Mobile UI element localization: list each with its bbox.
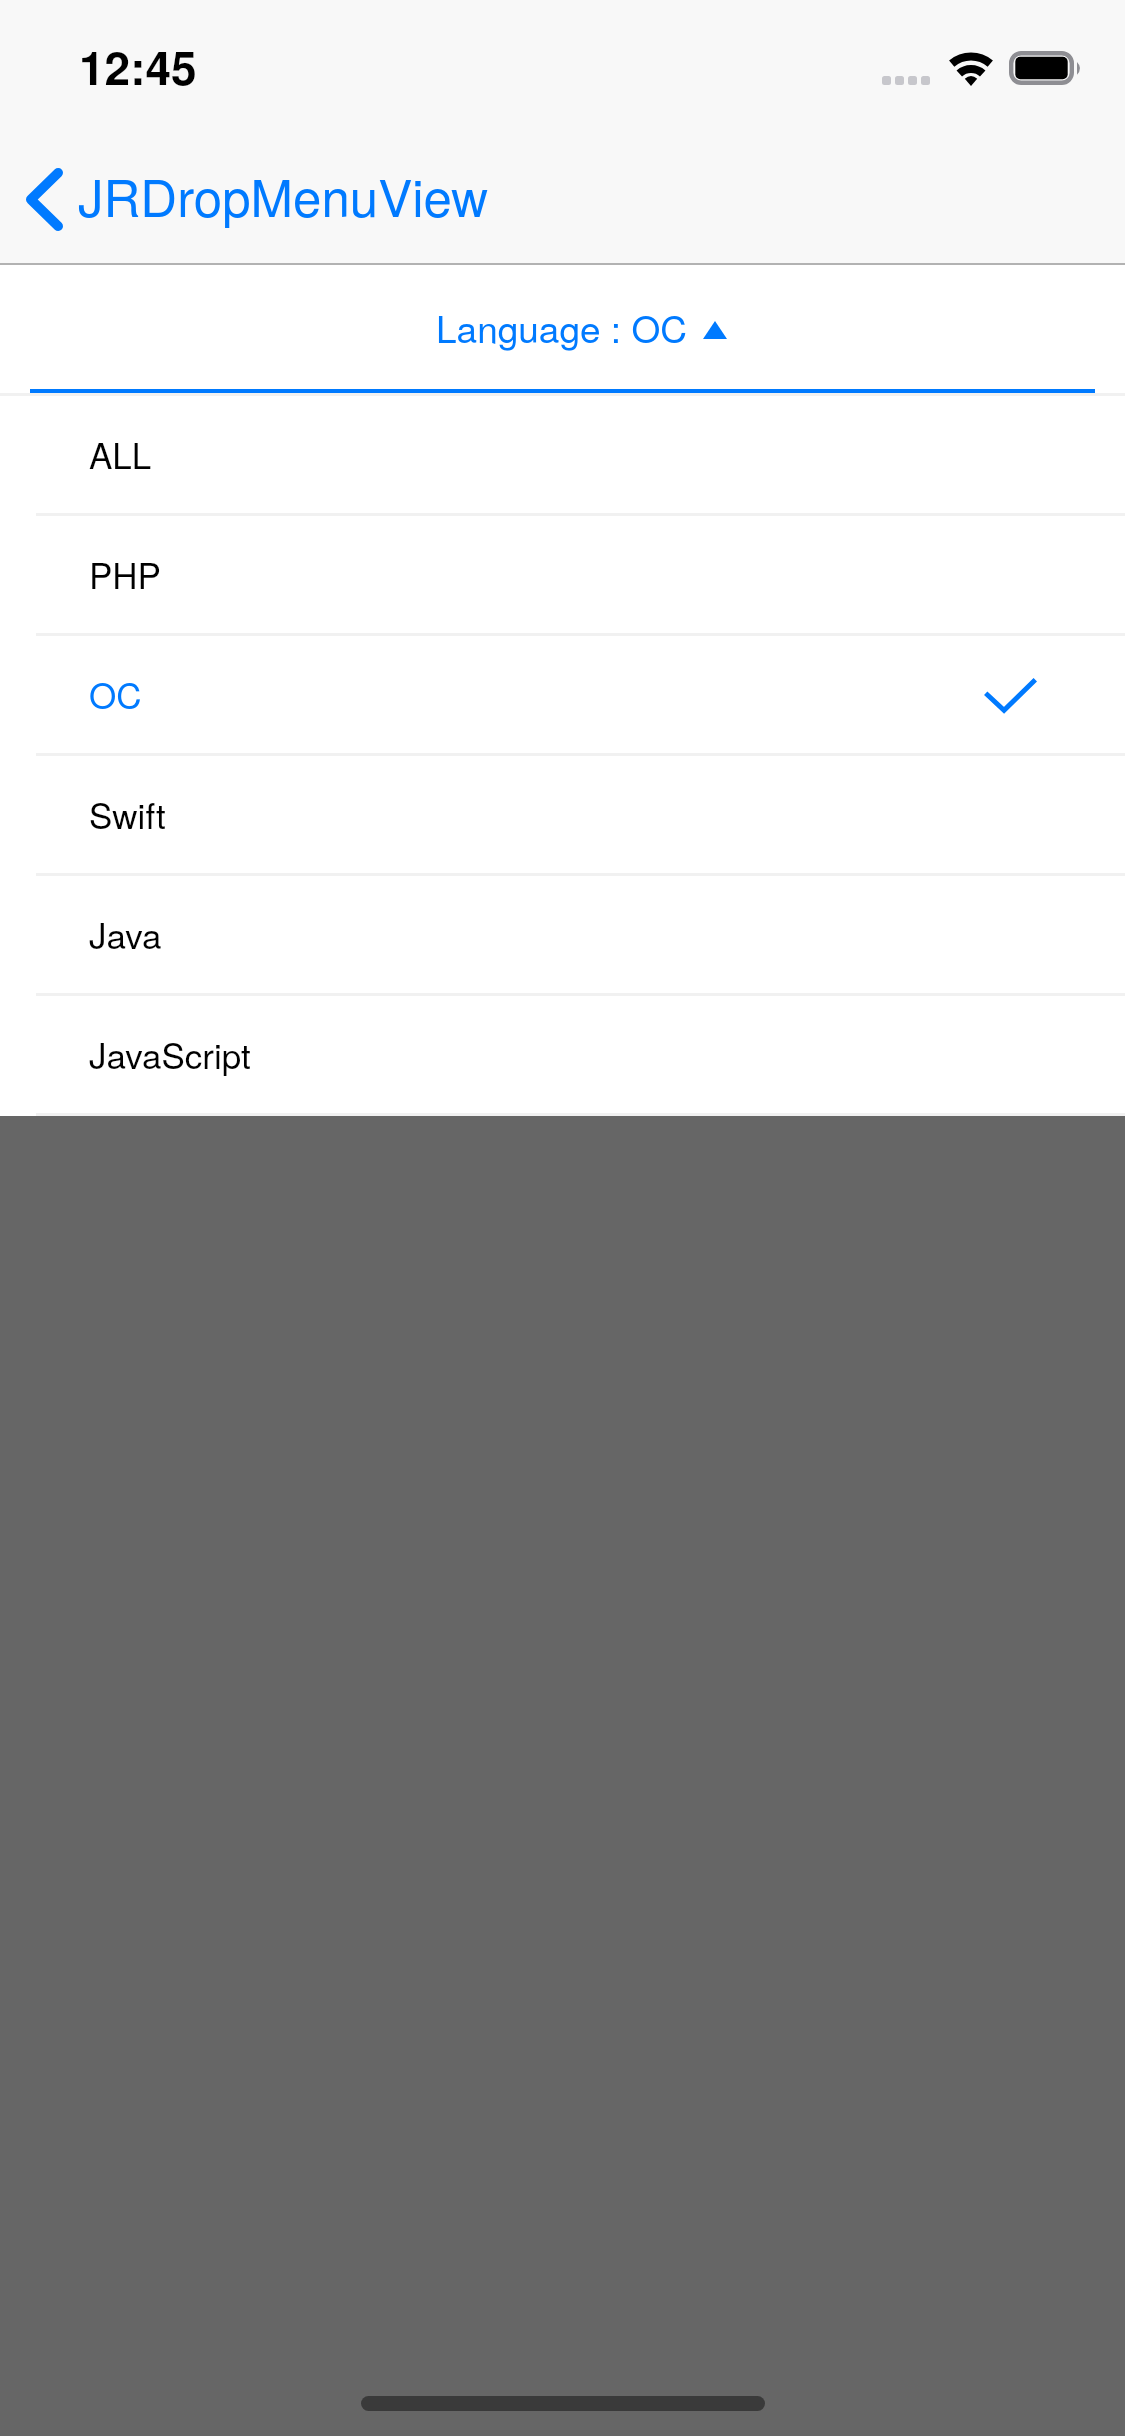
button[interactable]: Swift xyxy=(0,756,1125,873)
staticText: Swift xyxy=(89,789,166,839)
other: Back xyxy=(26,168,63,231)
staticText: OC xyxy=(89,669,142,719)
staticText: Language : OC xyxy=(436,301,687,354)
staticText: JavaScript xyxy=(89,1029,251,1079)
button[interactable]: Language : OC xyxy=(0,264,1125,393)
staticText: PHP xyxy=(89,549,161,599)
button[interactable]: ALL xyxy=(0,396,1125,513)
staticText: JRDropMenuView xyxy=(78,158,489,231)
button[interactable]: Back xyxy=(8,152,507,237)
button[interactable]: OC xyxy=(0,636,1125,753)
button[interactable]: Dismiss menu xyxy=(0,0,1125,2436)
staticText: Java xyxy=(89,909,162,959)
button[interactable]: Java xyxy=(0,876,1125,993)
staticText: ALL xyxy=(89,429,152,479)
button[interactable]: PHP xyxy=(0,516,1125,633)
staticText: 12:45 xyxy=(79,33,197,99)
button[interactable]: JavaScript xyxy=(0,996,1125,1113)
